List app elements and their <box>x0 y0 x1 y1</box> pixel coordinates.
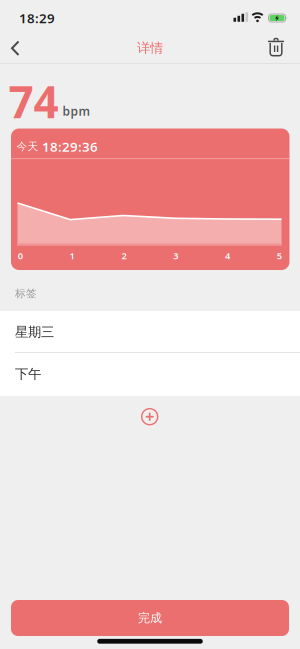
staticText: 完成 <box>138 611 162 625</box>
staticText: 标签 <box>15 287 37 300</box>
staticText: 1 <box>70 249 75 262</box>
staticText: 74 <box>8 72 58 130</box>
staticText: 3 <box>173 249 178 262</box>
staticText: 详情 <box>137 40 163 56</box>
button[interactable]: 星期三 <box>0 311 300 352</box>
staticText: 今天 <box>16 140 38 153</box>
staticText: 18:29:36 <box>42 138 98 155</box>
staticText: 5 <box>277 249 282 262</box>
button[interactable]: Back <box>0 28 40 68</box>
staticText: 2 <box>121 249 126 262</box>
staticText: 0 <box>18 249 23 262</box>
button[interactable]: Add tag <box>128 395 172 439</box>
staticText: bpm <box>62 103 90 119</box>
button[interactable]: 完成 <box>11 600 289 636</box>
staticText: 下午 <box>15 366 41 382</box>
staticText: 4 <box>225 249 230 262</box>
staticText: 18:29 <box>19 9 55 27</box>
button[interactable]: Delete <box>256 28 296 68</box>
button[interactable]: 下午 <box>0 352 300 396</box>
staticText: 星期三 <box>15 324 54 340</box>
